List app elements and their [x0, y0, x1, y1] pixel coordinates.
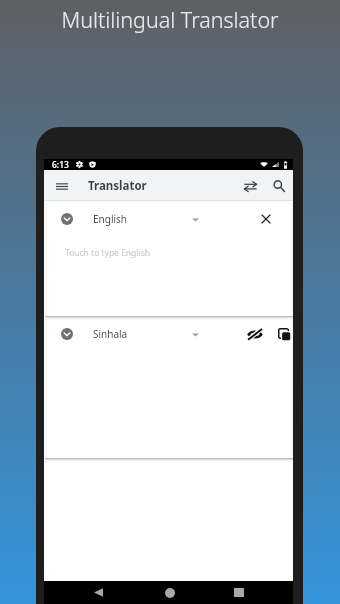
staticText: Sinhala	[93, 327, 128, 341]
button[interactable]: Clear text	[255, 208, 277, 230]
button[interactable]: Expand English	[56, 208, 77, 229]
staticText: Multilingual Translator	[0, 5, 340, 34]
staticText: 6:13	[52, 159, 69, 170]
button[interactable]: Open navigation menu	[50, 174, 74, 198]
button[interactable]: Swap languages	[238, 174, 262, 198]
button[interactable]: Copy translation	[273, 323, 291, 345]
staticText: Touch to type English	[65, 247, 151, 259]
button[interactable]: Expand Sinhala	[56, 323, 77, 344]
button[interactable]: Search	[267, 174, 291, 198]
button[interactable]: Hide translation	[244, 323, 266, 345]
button[interactable]: Back	[85, 581, 111, 604]
button[interactable]: Home	[157, 581, 183, 604]
staticText: English	[93, 212, 128, 226]
staticText: Translator	[88, 178, 147, 194]
button[interactable]: Recent apps	[226, 581, 252, 604]
